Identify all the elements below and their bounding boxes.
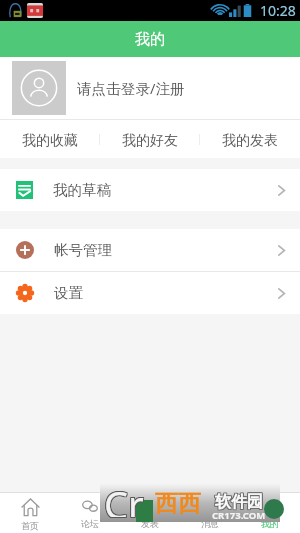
staticText: Cr: [105, 479, 145, 518]
staticText: 西西: [155, 489, 201, 518]
button[interactable]: Messages: [180, 492, 240, 533]
staticText: Cr: [104, 477, 144, 516]
button[interactable]: 我的好友: [100, 120, 200, 158]
staticText: 论坛: [81, 518, 99, 529]
staticText: 软件园: [214, 491, 262, 511]
staticText: 软件园: [215, 493, 263, 513]
button[interactable]: 我的草稿: [0, 169, 300, 211]
button[interactable]: 请点击登录/注册: [0, 57, 300, 119]
staticText: 我的发表: [222, 132, 278, 150]
button[interactable]: 帐号管理: [0, 229, 300, 271]
button[interactable]: Post: [120, 492, 180, 533]
staticText: 10:28: [260, 1, 296, 20]
staticText: 软件园: [216, 492, 264, 512]
staticText: Cr: [104, 478, 144, 517]
staticText: 软件园: [215, 492, 263, 512]
staticText: Cr: [104, 479, 144, 518]
staticText: Cr: [105, 477, 145, 516]
staticText: Cr: [103, 477, 143, 516]
staticText: 首页: [21, 520, 39, 531]
staticText: Cr: [105, 478, 145, 517]
staticText: 软件园: [215, 491, 263, 511]
staticText: 我的收藏: [22, 132, 78, 150]
button[interactable]: 我的发表: [200, 120, 300, 158]
staticText: 软件园: [216, 491, 264, 511]
button[interactable]: Home: [0, 492, 60, 533]
staticText: CR173.COM: [212, 509, 266, 522]
staticText: 帐号管理: [54, 241, 112, 259]
staticText: 请点击登录/注册: [77, 78, 185, 98]
staticText: Cr: [103, 478, 143, 517]
button[interactable]: 设置: [0, 272, 300, 314]
staticText: Cr: [103, 479, 143, 518]
staticText: 软件园: [214, 493, 262, 513]
staticText: 发表: [141, 518, 159, 529]
staticText: 消息: [201, 518, 219, 529]
button[interactable]: 我的收藏: [0, 120, 100, 158]
staticText: 我的: [135, 30, 165, 49]
staticText: 我的好友: [122, 132, 178, 150]
button[interactable]: Mine: [240, 492, 300, 533]
staticText: 软件园: [216, 493, 264, 513]
staticText: 设置: [54, 284, 83, 302]
button[interactable]: Forum: [60, 492, 120, 533]
staticText: 我的草稿: [53, 181, 111, 199]
staticText: 软件园: [214, 492, 262, 512]
staticText: 我的: [261, 518, 279, 529]
